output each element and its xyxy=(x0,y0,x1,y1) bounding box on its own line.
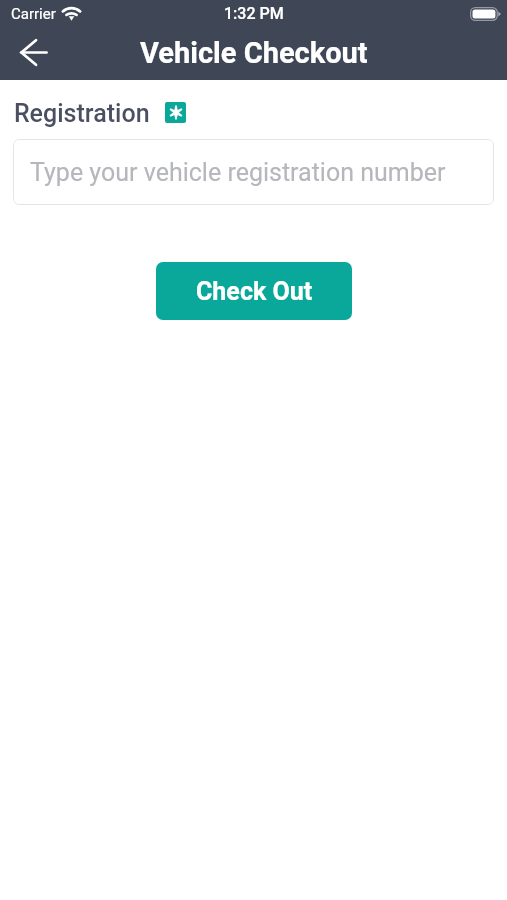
button[interactable]: Back xyxy=(11,29,57,75)
staticText: Type your vehicle registration number xyxy=(30,158,446,187)
staticText: Carrier xyxy=(11,5,56,23)
button[interactable]: Check Out xyxy=(156,262,352,320)
staticText: Vehicle Checkout xyxy=(140,36,368,70)
staticText: 1:32 PM xyxy=(224,4,284,23)
staticText: Check Out xyxy=(196,277,313,306)
staticText: Registration xyxy=(14,99,150,128)
button[interactable]: Type your vehicle registration number xyxy=(13,139,494,205)
